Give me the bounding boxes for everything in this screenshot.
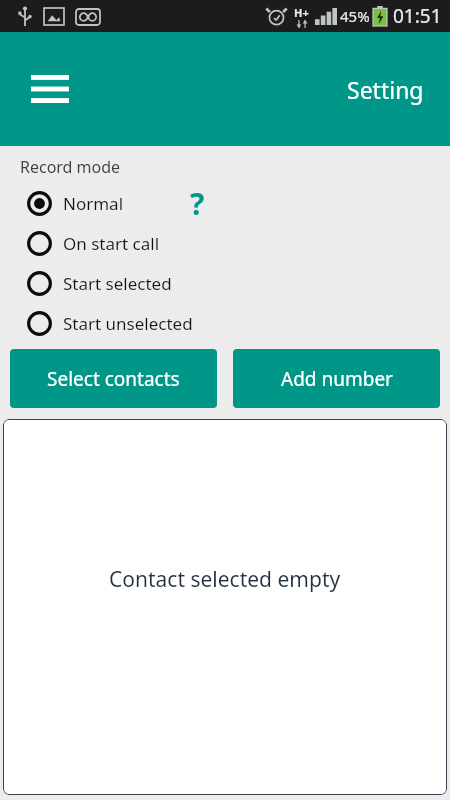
staticText: 01:51: [393, 3, 442, 29]
staticText: Start selected: [63, 272, 172, 295]
staticText: On start call: [63, 232, 160, 255]
button[interactable]: Select contacts: [10, 349, 217, 408]
button[interactable]: Normal: [0, 183, 450, 223]
button[interactable]: Contact selected empty: [3, 419, 447, 795]
staticText: Record mode: [20, 156, 121, 178]
staticText: Select contacts: [47, 366, 180, 392]
staticText: Contact selected empty: [109, 565, 341, 594]
button[interactable]: Open navigation menu: [16, 61, 84, 117]
button[interactable]: Help about record mode: [170, 183, 224, 223]
staticText: Setting: [347, 74, 424, 105]
button[interactable]: Start selected: [0, 263, 450, 303]
button[interactable]: Setting: [335, 66, 436, 113]
staticText: H+: [294, 5, 309, 20]
staticText: 45%: [340, 6, 370, 26]
button[interactable]: On start call: [0, 223, 450, 263]
staticText: Normal: [63, 192, 124, 215]
staticText: Add number: [281, 366, 393, 392]
button[interactable]: Start unselected: [0, 303, 450, 343]
button[interactable]: Add number: [233, 349, 440, 408]
staticText: ?: [190, 183, 205, 223]
staticText: Start unselected: [63, 312, 193, 335]
